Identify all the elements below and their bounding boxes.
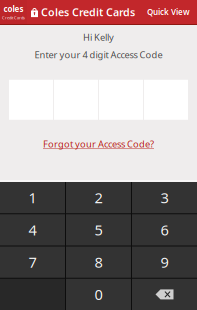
staticText: 0 <box>94 285 102 304</box>
staticText: 3 <box>160 188 168 207</box>
button[interactable]: 4 <box>0 214 65 245</box>
staticText: 9 <box>160 252 168 272</box>
staticText: 8 <box>94 252 102 272</box>
staticText: coles <box>3 3 23 14</box>
button[interactable]: 1 <box>0 182 65 213</box>
button[interactable]: Forgot your Access Code? <box>43 135 154 153</box>
button[interactable]: 3 <box>132 182 197 213</box>
staticText: Hi Kelly <box>83 31 114 43</box>
button[interactable]: Delete <box>132 279 197 310</box>
button[interactable]: 6 <box>132 214 197 245</box>
button[interactable]: 5 <box>66 214 131 245</box>
staticText: 7 <box>28 252 36 272</box>
staticText: Coles Credit Cards <box>41 5 135 19</box>
staticText: Quick View <box>147 7 190 17</box>
staticText: 5 <box>94 220 102 240</box>
button[interactable]: 8 <box>66 246 131 278</box>
button[interactable]: 0 <box>66 279 131 310</box>
button[interactable]: 7 <box>0 246 65 278</box>
button[interactable]: Quick View <box>142 3 195 21</box>
staticText: 4 <box>28 220 36 240</box>
button[interactable]: 9 <box>132 246 197 278</box>
staticText: 1 <box>28 188 36 207</box>
staticText: Enter your 4 digit Access Code <box>34 48 162 61</box>
button[interactable]: 2 <box>66 182 131 213</box>
staticText: 2 <box>94 188 102 207</box>
staticText: Credit Cards <box>2 15 25 20</box>
staticText: Forgot your Access Code? <box>43 138 154 150</box>
staticText: 6 <box>160 220 168 240</box>
